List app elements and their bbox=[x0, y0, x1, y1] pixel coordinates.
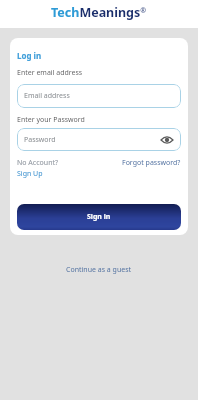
button[interactable]: Sign Up bbox=[17, 169, 43, 179]
staticText: Sign in bbox=[87, 212, 111, 222]
staticText: No Account? bbox=[17, 158, 59, 168]
button[interactable]: Email address bbox=[17, 84, 181, 108]
staticText: Log in bbox=[17, 50, 42, 61]
staticText: TechMeanings® bbox=[51, 4, 147, 21]
staticText: Email address bbox=[24, 91, 70, 101]
staticText: Enter email address bbox=[17, 68, 83, 78]
button[interactable]: Password bbox=[17, 128, 181, 151]
button[interactable]: Continue as a guest bbox=[66, 265, 132, 275]
staticText: Password bbox=[24, 135, 56, 145]
button[interactable]: Forgot password? bbox=[122, 158, 181, 168]
button[interactable]: Sign in bbox=[17, 204, 181, 230]
button[interactable] bbox=[161, 134, 173, 146]
staticText: Enter your Password bbox=[17, 115, 85, 125]
